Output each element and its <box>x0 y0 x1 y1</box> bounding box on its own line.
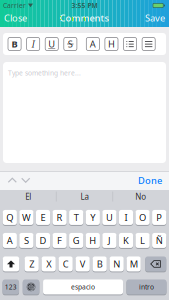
staticText: J <box>108 234 111 247</box>
staticText: H <box>89 234 96 247</box>
button[interactable]: O <box>135 210 150 225</box>
button[interactable]: Ñ <box>152 233 166 248</box>
staticText: N <box>113 258 120 270</box>
staticText: Done <box>138 174 162 187</box>
staticText: 123 <box>5 282 17 291</box>
staticText: No <box>135 191 146 202</box>
staticText: K <box>123 234 129 247</box>
staticText: E <box>40 211 45 224</box>
staticText: Carrier <box>3 1 26 10</box>
staticText: Ñ <box>156 234 163 247</box>
button[interactable]: K <box>119 233 133 248</box>
button[interactable]: Previous field <box>8 178 16 183</box>
button[interactable]: A <box>3 233 17 248</box>
staticText: B <box>97 258 103 270</box>
button[interactable]: Y <box>86 210 100 225</box>
button[interactable]: Done <box>138 174 162 187</box>
button[interactable]: X <box>42 256 56 271</box>
button[interactable]: B <box>93 256 107 271</box>
staticText: D <box>39 234 46 247</box>
staticText: El <box>25 191 31 202</box>
staticText: 3:55 PM <box>71 1 97 10</box>
staticText: C <box>63 258 69 270</box>
button[interactable]: Next keyboard <box>23 279 39 294</box>
staticText: Y <box>90 211 95 224</box>
staticText: W <box>22 211 31 224</box>
button[interactable]: H <box>105 37 118 51</box>
button[interactable]: B <box>8 37 21 51</box>
staticText: Z <box>29 258 34 270</box>
button[interactable]: Close <box>0 12 27 24</box>
staticText: intro <box>139 282 154 291</box>
button[interactable]: espacio <box>43 279 123 294</box>
button[interactable]: T <box>69 210 83 225</box>
button[interactable]: H <box>86 233 100 248</box>
staticText: O <box>139 211 146 224</box>
button[interactable]: I <box>27 37 40 51</box>
button[interactable]: La <box>56 188 113 206</box>
staticText: U <box>48 38 55 50</box>
button[interactable]: S <box>19 233 33 248</box>
button[interactable]: F <box>52 233 67 248</box>
button[interactable]: I <box>119 210 133 225</box>
button[interactable]: Delete <box>145 256 166 271</box>
staticText: Type something here... <box>8 68 81 77</box>
button[interactable]: R <box>52 210 67 225</box>
staticText: La <box>80 191 88 202</box>
button[interactable]: W <box>19 210 33 225</box>
staticText: Close <box>4 12 27 24</box>
staticText: M <box>130 258 138 270</box>
staticText: L <box>140 234 145 247</box>
button[interactable]: El <box>0 188 56 206</box>
staticText: I <box>32 38 35 50</box>
staticText: P <box>156 211 162 224</box>
button[interactable]: Save <box>145 12 169 24</box>
button[interactable]: Next field <box>22 178 30 183</box>
staticText: T <box>74 211 79 224</box>
staticText: R <box>57 211 63 224</box>
staticText: G <box>73 234 80 247</box>
button[interactable]: D <box>36 233 50 248</box>
button[interactable]: C <box>59 256 73 271</box>
button[interactable]: intro <box>126 279 166 294</box>
button[interactable]: Numbered list <box>142 37 155 51</box>
button[interactable]: L <box>135 233 150 248</box>
button[interactable]: U <box>45 37 58 51</box>
button[interactable]: Q <box>3 210 17 225</box>
button[interactable]: J <box>102 233 116 248</box>
staticText: Comments <box>59 12 109 24</box>
button[interactable]: N <box>110 256 124 271</box>
button[interactable]: Z <box>25 256 39 271</box>
button[interactable]: Shift <box>3 256 19 271</box>
button[interactable]: Bulleted list <box>123 37 137 51</box>
staticText: B <box>12 38 18 50</box>
staticText: X <box>46 258 51 270</box>
staticText: A <box>90 38 96 50</box>
staticText: H <box>108 38 115 50</box>
button[interactable]: S <box>64 37 77 51</box>
button[interactable]: A <box>86 37 99 51</box>
button[interactable]: No <box>113 188 169 206</box>
staticText: F <box>57 234 62 247</box>
staticText: A <box>7 234 13 247</box>
staticText: S <box>68 38 73 50</box>
button[interactable]: V <box>76 256 90 271</box>
button[interactable]: U <box>102 210 116 225</box>
staticText: V <box>80 258 86 270</box>
staticText: espacio <box>71 282 95 291</box>
staticText: Save <box>145 12 165 24</box>
staticText: I <box>124 211 127 224</box>
button[interactable]: P <box>152 210 166 225</box>
staticText: S <box>24 234 29 247</box>
staticText: U <box>106 211 113 224</box>
button[interactable]: G <box>69 233 83 248</box>
button[interactable]: M <box>127 256 141 271</box>
button[interactable]: Numbers <box>3 279 19 294</box>
button[interactable]: E <box>36 210 50 225</box>
staticText: Q <box>6 211 13 224</box>
